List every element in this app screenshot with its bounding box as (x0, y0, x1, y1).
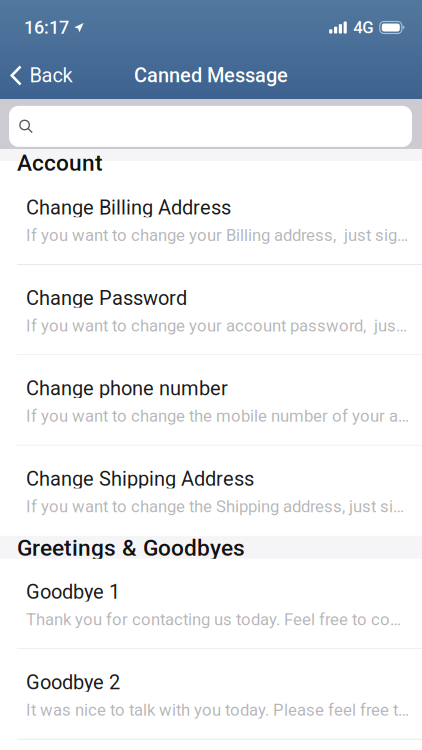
staticText: Change Shipping Address (26, 467, 254, 491)
staticText: Goodbye 2 (26, 671, 120, 694)
staticText: If you want to change the mobile number … (26, 406, 409, 426)
staticText: Canned Message (134, 64, 288, 87)
button[interactable]: Change Password (0, 265, 422, 355)
button[interactable]: Goodbye 2 (0, 649, 422, 740)
staticText: Change phone number (26, 377, 228, 400)
staticText: It was nice to talk with you today. Plea… (26, 700, 409, 720)
button[interactable]: Change phone number (0, 355, 422, 446)
button[interactable]: Back (0, 52, 82, 99)
staticText: Goodbye 1 (26, 580, 120, 604)
button[interactable]: Goodbye 1 (0, 559, 422, 649)
staticText: Change Password (26, 286, 187, 310)
staticText: Change Billing Address (26, 196, 231, 219)
staticText: Account (17, 150, 103, 176)
staticText: 16:17 (24, 17, 69, 38)
staticText: Back (29, 64, 72, 87)
staticText: Thank you for contacting us today. Feel … (26, 610, 401, 629)
staticText: If you want to change your Billing addre… (26, 225, 408, 245)
button[interactable]: Change Shipping Address (0, 446, 422, 536)
staticText: If you want to change your account passw… (26, 316, 407, 335)
staticText: Greetings & Goodbyes (17, 535, 245, 561)
button[interactable] (9, 106, 412, 147)
button[interactable]: Change Billing Address (0, 175, 422, 265)
staticText: If you want to change the Shipping addre… (26, 497, 404, 516)
staticText: 4G (353, 18, 373, 37)
